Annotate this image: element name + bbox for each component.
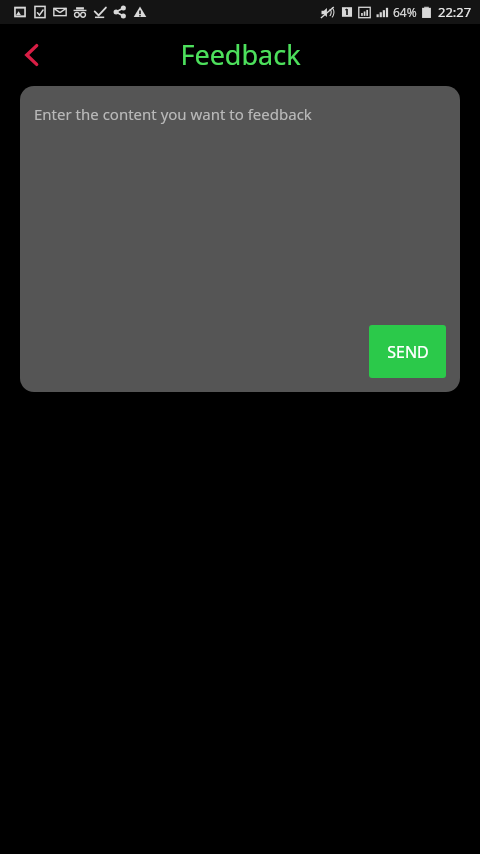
staticText: Enter the content you want to feedback: [34, 104, 312, 124]
button[interactable]: SEND: [369, 325, 446, 378]
staticText: 22:27: [438, 3, 472, 21]
staticText: Feedback: [180, 36, 301, 73]
button[interactable]: Back: [6, 29, 58, 81]
button[interactable]: Enter the content you want to feedback: [20, 86, 460, 392]
staticText: 64%: [393, 4, 417, 20]
staticText: SEND: [387, 341, 429, 363]
